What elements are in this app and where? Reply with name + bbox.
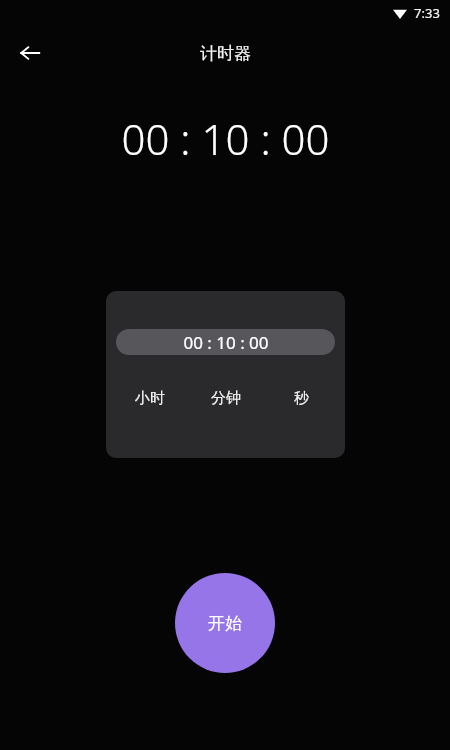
button[interactable]: 00 : 10 : 00 — [106, 291, 345, 458]
staticText: 分钟 — [211, 389, 241, 408]
button[interactable]: 开始 — [175, 573, 275, 673]
staticText: 秒 — [294, 389, 309, 408]
staticText: 7:33 — [414, 4, 440, 22]
staticText: 开始 — [208, 613, 242, 634]
staticText: 小时 — [135, 389, 165, 408]
staticText: 计时器 — [200, 43, 251, 64]
staticText: 00 : 10 : 00 — [183, 331, 269, 354]
staticText: 00 : 10 : 00 — [121, 110, 330, 167]
button[interactable]: Back — [8, 31, 52, 75]
